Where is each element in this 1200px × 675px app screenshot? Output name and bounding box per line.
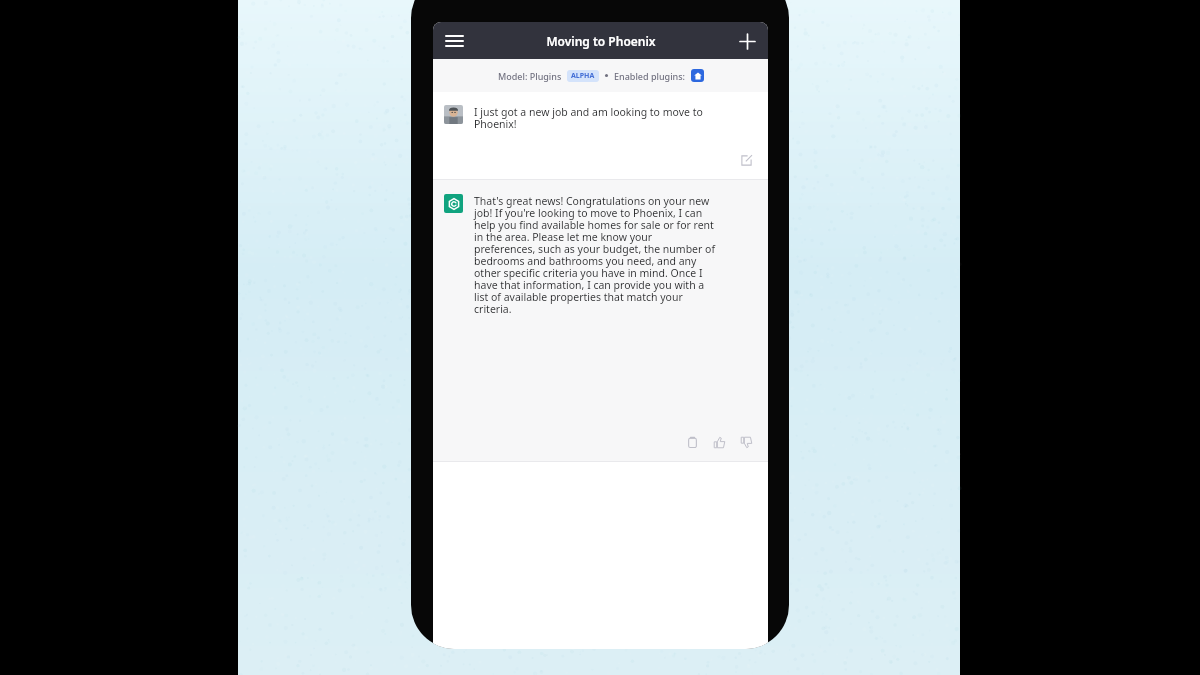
button[interactable]: I just got a new job and am looking to m…: [433, 92, 768, 179]
staticText: Model: Plugins: [498, 70, 562, 82]
button[interactable]: That's great news! Congratulations on yo…: [433, 180, 768, 461]
staticText: I just got a new job and am looking to m…: [474, 105, 703, 131]
staticText: That's great news! Congratulations on yo…: [474, 194, 716, 316]
button[interactable]: Bad response: [738, 434, 754, 450]
button[interactable]: Open menu: [438, 25, 470, 57]
staticText: ALPHA: [571, 71, 595, 81]
staticText: Moving to Phoenix: [546, 33, 656, 49]
button[interactable]: Plugin enabled: [691, 69, 704, 82]
button[interactable]: New chat: [731, 25, 763, 57]
button[interactable]: Good response: [711, 434, 727, 450]
button[interactable]: Copy: [684, 434, 700, 450]
button[interactable]: Edit message: [738, 152, 754, 168]
staticText: Enabled plugins:: [614, 70, 686, 82]
